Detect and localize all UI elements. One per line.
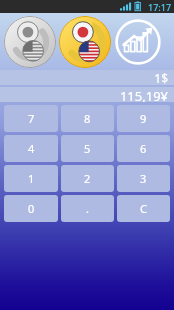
staticText: 5 bbox=[84, 141, 91, 156]
button[interactable]: 5 bbox=[61, 135, 114, 162]
button[interactable]: 4 bbox=[4, 135, 58, 162]
button[interactable]: 115,19¥ bbox=[0, 87, 174, 102]
staticText: 17:17 bbox=[148, 1, 172, 13]
button[interactable]: 1 bbox=[4, 165, 58, 192]
button[interactable]: . bbox=[61, 195, 114, 222]
staticText: 8 bbox=[84, 111, 91, 126]
button[interactable]: Previous conversion bbox=[4, 16, 56, 68]
button[interactable]: 0 bbox=[4, 195, 58, 222]
button[interactable]: 7 bbox=[4, 105, 58, 132]
button[interactable]: 9 bbox=[117, 105, 170, 132]
staticText: 4 bbox=[28, 141, 35, 156]
button[interactable]: 2 bbox=[61, 165, 114, 192]
staticText: 0 bbox=[28, 201, 35, 216]
staticText: . bbox=[86, 201, 89, 216]
button[interactable]: 8 bbox=[61, 105, 114, 132]
button[interactable]: 3 bbox=[117, 165, 170, 192]
staticText: 9 bbox=[140, 111, 147, 126]
staticText: 6 bbox=[140, 141, 147, 156]
staticText: 1 bbox=[28, 171, 35, 186]
button[interactable]: Swap currencies bbox=[59, 16, 111, 68]
staticText: C bbox=[140, 201, 147, 216]
staticText: 1$ bbox=[154, 70, 168, 85]
staticText: 3 bbox=[140, 171, 147, 186]
staticText: 115,19¥ bbox=[119, 87, 168, 102]
staticText: 2 bbox=[84, 171, 91, 186]
staticText: 7 bbox=[28, 111, 35, 126]
button[interactable]: Rate chart bbox=[114, 18, 162, 66]
button[interactable]: 6 bbox=[117, 135, 170, 162]
button[interactable]: C bbox=[117, 195, 170, 222]
button[interactable]: 1$ bbox=[0, 70, 174, 85]
